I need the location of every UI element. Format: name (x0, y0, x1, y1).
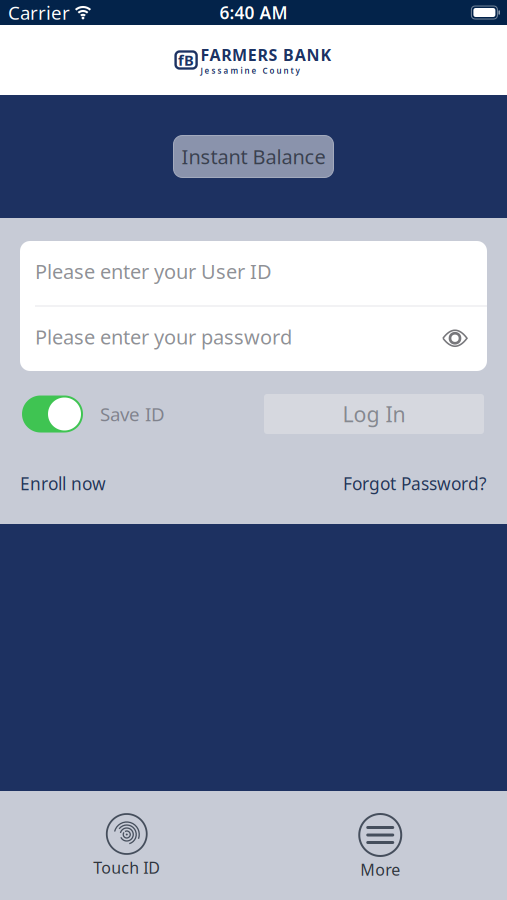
button[interactable]: Log In (264, 394, 484, 434)
staticText: Save ID (100, 402, 165, 426)
button[interactable]: More (253, 814, 507, 880)
button[interactable]: Please enter your User ID (20, 241, 487, 305)
button[interactable]: Touch ID (0, 814, 253, 878)
staticText: Enroll now (20, 472, 106, 495)
staticText: 6:40 AM (219, 1, 287, 24)
staticText: FARMERS BANK (201, 44, 331, 65)
staticText: Please enter your password (35, 323, 292, 350)
staticText: Touch ID (93, 857, 160, 878)
button[interactable]: Show password (442, 329, 468, 348)
staticText: fB (178, 50, 194, 70)
staticText: J e s s a m i n e C o u n t y (201, 65, 300, 76)
button[interactable]: Instant Balance (173, 135, 333, 177)
button[interactable]: Forgot Password? (343, 472, 487, 495)
staticText: Carrier (8, 0, 70, 25)
staticText: Please enter your User ID (35, 258, 272, 285)
staticText: More (360, 859, 400, 880)
button[interactable]: Save ID (22, 395, 83, 432)
staticText: Log In (342, 400, 405, 428)
button[interactable]: Please enter your password (20, 306, 487, 371)
staticText: Forgot Password? (343, 472, 487, 495)
button[interactable]: Enroll now (20, 472, 106, 495)
staticText: Instant Balance (181, 143, 325, 170)
